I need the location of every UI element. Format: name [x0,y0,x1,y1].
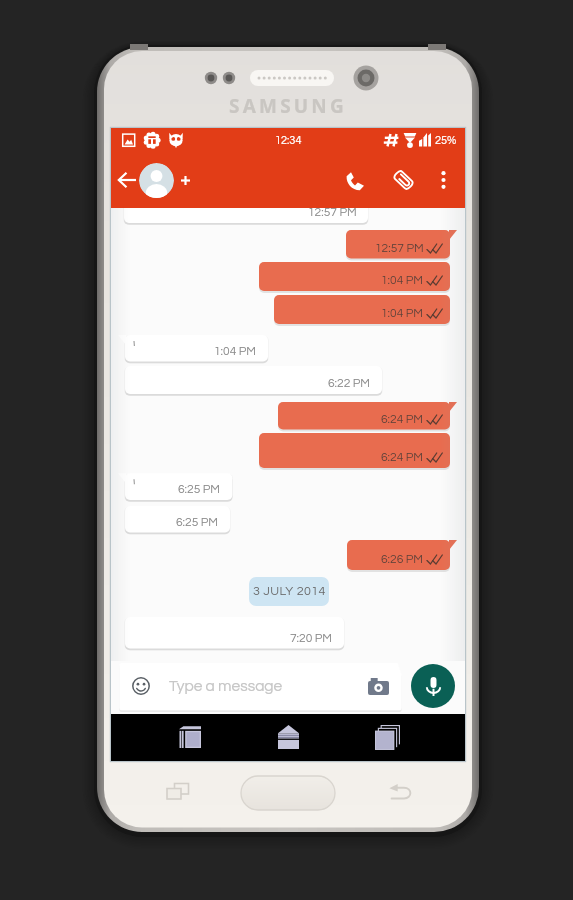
button[interactable]: Call [336,161,374,199]
button[interactable]: 6:26 PM [347,540,450,570]
button[interactable]: Attach file [384,161,422,199]
staticText: SAMSUNG [229,93,347,119]
button[interactable]: Back [108,161,146,199]
button[interactable]: 6:24 PM [278,402,450,430]
staticText: 6:24 PM [381,451,424,463]
button[interactable]: Record voice message [411,664,455,708]
button[interactable]: 6:25 PM [125,506,230,533]
button[interactable]: Back [167,714,213,760]
staticText: 6:26 PM [381,553,424,565]
staticText: 6:22 PM [328,377,371,389]
staticText: 12:34 [275,135,302,146]
button[interactable]: 6:25 PM [125,473,232,500]
button[interactable]: Type a message [169,661,359,711]
button[interactable]: 1:04 PM [259,262,450,291]
staticText: 12:57 PM [308,208,357,218]
button[interactable]: Recent apps [364,714,410,760]
button[interactable]: 1:04 PM [274,295,450,324]
button[interactable]: 3 JULY 2014 [249,577,329,606]
button[interactable]: 6:24 PM [259,433,450,468]
button[interactable]: Add contact [166,161,204,199]
button[interactable]: 1:04 PM [125,335,268,362]
staticText: 25% [435,135,457,146]
staticText: 12:57 PM [375,242,424,254]
button[interactable]: Home [265,714,311,760]
button[interactable]: More options [424,161,462,199]
button[interactable]: Contact avatar [139,163,174,198]
staticText: Type a message [169,678,283,694]
staticText: 6:25 PM [176,516,219,528]
button[interactable]: 6:22 PM [125,366,382,394]
staticText: 1:04 PM [381,274,424,286]
button[interactable]: Camera [366,674,390,698]
button[interactable]: 7:20 PM [125,617,344,649]
staticText: 6:25 PM [178,483,221,495]
staticText: 3 JULY 2014 [253,585,326,598]
button[interactable]: Emoji [129,674,153,698]
button[interactable]: 12:57 PM [124,208,368,223]
button[interactable]: 12:57 PM [346,230,450,259]
staticText: 7:20 PM [290,632,333,644]
staticText: 1:04 PM [381,307,424,319]
staticText: 1:04 PM [214,345,257,357]
staticText: 6:24 PM [381,413,424,425]
